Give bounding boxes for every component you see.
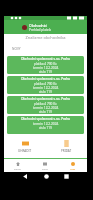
button[interactable]: Obchodni spolecnost s.r.o. Praha: [7, 116, 84, 134]
button[interactable]: UHRADIT: [4, 134, 45, 158]
staticText: NOVY: [12, 47, 21, 51]
staticText: platba 4 790 Kc: [34, 62, 57, 66]
staticText: Prehled plateb: [29, 28, 51, 32]
button[interactable]: Account: [59, 159, 87, 172]
button[interactable]: Home: [4, 159, 31, 172]
staticText: cislo 119: [39, 70, 52, 74]
staticText: UHRADIT: [18, 149, 32, 153]
staticText: cislo 119: [39, 126, 52, 130]
staticText: Obchodni spolecnost s.r.o. Praha: [21, 77, 70, 81]
staticText: Ucet: [70, 167, 76, 170]
staticText: PRIDAT: [61, 149, 72, 153]
staticText: Karty: [42, 167, 48, 170]
button[interactable]: PRIDAT: [45, 134, 87, 158]
staticText: platba 4 790 Kc: [34, 82, 57, 86]
staticText: cislo 119: [39, 110, 52, 114]
button[interactable]: Obchodni spolecnost s.r.o. Praha: [7, 76, 84, 94]
button[interactable]: Cards: [31, 159, 59, 172]
staticText: termin 12.2.2024: [33, 66, 59, 70]
staticText: termin 12.2.2024: [33, 106, 59, 110]
staticText: termin 12.2.2024: [33, 86, 59, 90]
staticText: cislo 119: [39, 90, 52, 94]
staticText: Znalizme obchodnika: [4, 35, 87, 40]
button[interactable]: Obchodni spolecnost s.r.o. Praha: [7, 56, 84, 74]
staticText: platba 4 790 Kc: [34, 102, 57, 106]
staticText: Obchodni spolecnost s.r.o. Praha: [21, 117, 70, 121]
staticText: Domu: [14, 167, 21, 170]
staticText: termin 12.2.2024: [33, 122, 59, 126]
staticText: Obchodnici: [29, 23, 48, 28]
staticText: Obchodni spolecnost s.r.o. Praha: [21, 57, 70, 61]
staticText: Obchodni spolecnost s.r.o. Praha: [21, 97, 70, 101]
button[interactable]: Obchodni spolecnost s.r.o. Praha: [7, 96, 84, 114]
